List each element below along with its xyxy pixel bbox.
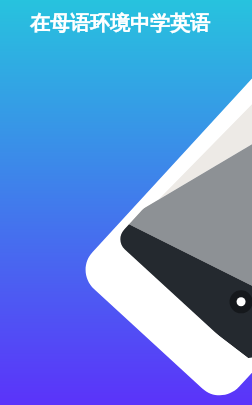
staticText: 在母语环境中学英语 [30,11,210,36]
